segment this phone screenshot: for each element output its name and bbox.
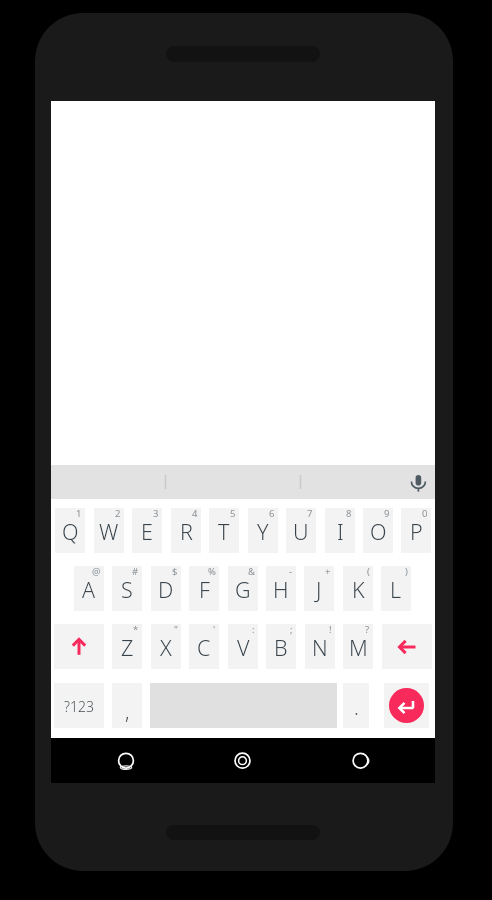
button[interactable]: K: [343, 566, 373, 611]
staticText: J: [316, 575, 322, 604]
staticText: C: [197, 633, 211, 662]
button[interactable]: U: [286, 508, 316, 553]
staticText: 9: [384, 507, 390, 520]
staticText: 8: [346, 507, 352, 520]
staticText: O: [370, 517, 387, 546]
button[interactable]: C: [189, 624, 219, 669]
staticText: 4: [192, 507, 198, 520]
button[interactable]: E: [132, 508, 162, 553]
button[interactable]: D: [151, 566, 181, 611]
button[interactable]: [51, 465, 435, 499]
staticText: +: [325, 565, 331, 578]
button[interactable]: [384, 683, 429, 728]
button[interactable]: [389, 688, 424, 723]
staticText: &: [248, 565, 255, 578]
staticText: G: [235, 575, 251, 604]
staticText: L: [390, 575, 402, 604]
staticText: H: [273, 575, 289, 604]
button[interactable]: F: [189, 566, 219, 611]
staticText: V: [237, 633, 250, 662]
staticText: 3: [153, 507, 159, 520]
button[interactable]: G: [228, 566, 258, 611]
button[interactable]: H: [266, 566, 296, 611]
staticText: ?123: [64, 697, 94, 716]
staticText: ": [174, 623, 178, 636]
button[interactable]: S: [112, 566, 142, 611]
button[interactable]: I: [325, 508, 355, 553]
button[interactable]: .: [343, 683, 369, 728]
button[interactable]: O: [363, 508, 393, 553]
button[interactable]: ?123: [54, 683, 104, 728]
button[interactable]: R: [171, 508, 201, 553]
staticText: B: [274, 633, 288, 662]
staticText: 6: [269, 507, 275, 520]
staticText: F: [199, 575, 210, 604]
staticText: R: [180, 517, 193, 546]
staticText: 0: [422, 507, 428, 520]
staticText: S: [121, 575, 133, 604]
staticText: 2: [115, 507, 121, 520]
button[interactable]: [220, 738, 265, 783]
staticText: %: [208, 565, 216, 578]
staticText: :: [252, 623, 255, 636]
button[interactable]: Q: [55, 508, 85, 553]
staticText: N: [312, 633, 328, 662]
staticText: 7: [307, 507, 313, 520]
staticText: $: [172, 565, 178, 578]
staticText: ': [213, 623, 216, 636]
staticText: -: [289, 565, 293, 578]
button[interactable]: [338, 738, 383, 783]
staticText: ?: [365, 623, 370, 636]
staticText: Z: [121, 633, 134, 662]
staticText: P: [410, 517, 423, 546]
button[interactable]: T: [209, 508, 239, 553]
button[interactable]: J: [304, 566, 334, 611]
staticText: ): [405, 565, 408, 578]
staticText: A: [82, 575, 96, 604]
staticText: 5: [230, 507, 236, 520]
button[interactable]: W: [94, 508, 124, 553]
button[interactable]: V: [228, 624, 258, 669]
staticText: .: [354, 694, 359, 721]
staticText: *: [133, 623, 139, 636]
staticText: E: [141, 517, 153, 546]
staticText: I: [337, 517, 344, 546]
staticText: ;: [290, 623, 293, 636]
staticText: ,: [125, 698, 130, 725]
button[interactable]: L: [381, 566, 411, 611]
button[interactable]: M: [343, 624, 373, 669]
staticText: Y: [257, 517, 269, 546]
button[interactable]: P: [401, 508, 431, 553]
staticText: #: [132, 565, 139, 578]
staticText: T: [218, 517, 230, 546]
button[interactable]: Y: [248, 508, 278, 553]
staticText: M: [349, 633, 368, 662]
staticText: !: [329, 623, 332, 636]
button[interactable]: ,: [112, 683, 142, 728]
staticText: @: [92, 565, 101, 578]
staticText: K: [352, 575, 365, 604]
staticText: W: [99, 517, 119, 546]
staticText: X: [160, 633, 172, 662]
staticText: U: [293, 517, 309, 546]
staticText: Q: [62, 517, 79, 546]
button[interactable]: B: [266, 624, 296, 669]
button[interactable]: Z: [112, 624, 142, 669]
staticText: D: [158, 575, 174, 604]
button[interactable]: [104, 738, 149, 783]
button[interactable]: N: [305, 624, 335, 669]
button[interactable]: A: [74, 566, 104, 611]
button[interactable]: X: [151, 624, 181, 669]
button[interactable]: [54, 624, 104, 669]
button[interactable]: [382, 624, 432, 669]
staticText: 1: [76, 507, 82, 520]
staticText: (: [367, 565, 370, 578]
